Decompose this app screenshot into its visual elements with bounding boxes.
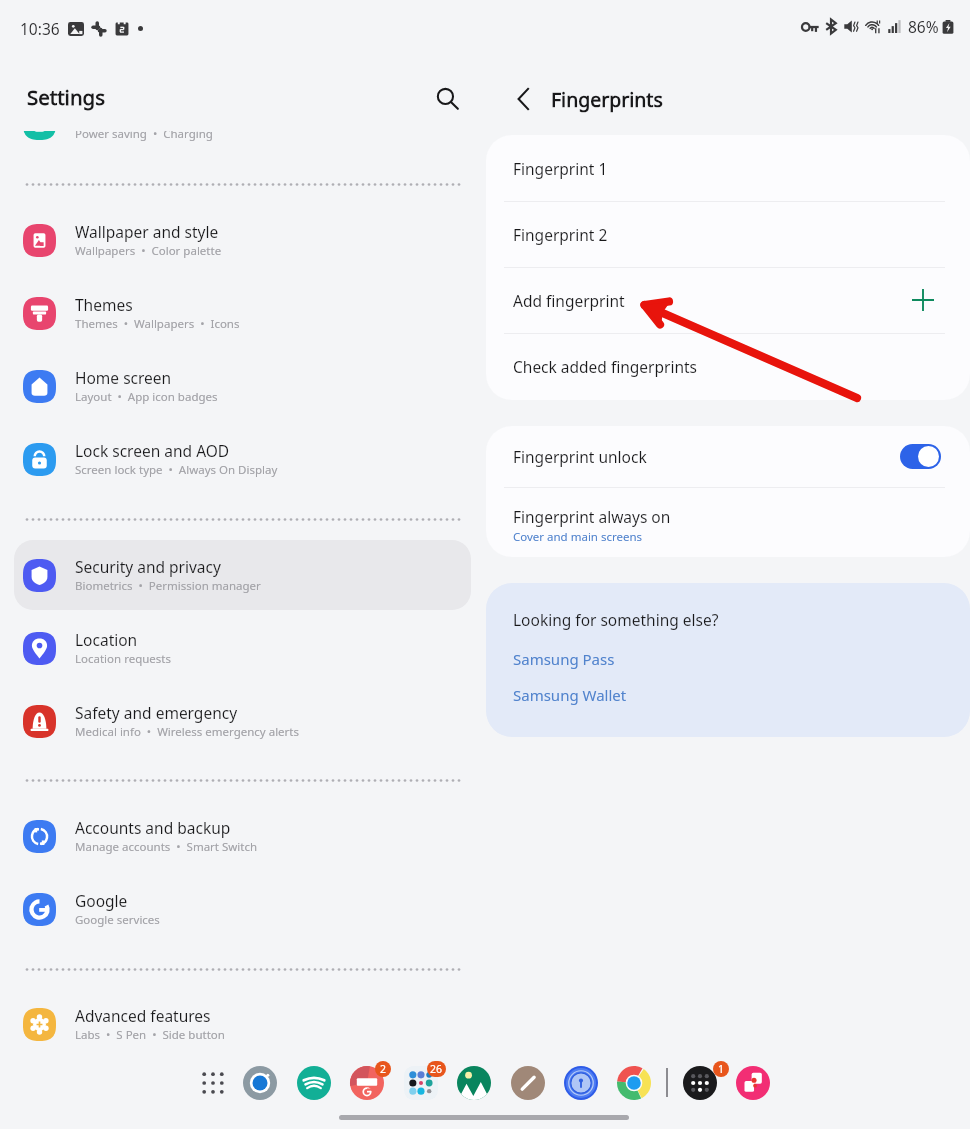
staticText: Fingerprint always on [513, 506, 671, 527]
button[interactable]: App [293, 1062, 335, 1104]
staticText: Lock screen and AOD [75, 440, 230, 461]
button[interactable]: Security and privacy [14, 540, 471, 610]
staticText: Check added fingerprints [513, 356, 698, 377]
staticText: Cover and main screens [513, 529, 643, 545]
staticText: 2 [380, 1062, 387, 1076]
button[interactable]: Fingerprint 2 [486, 201, 970, 267]
button[interactable]: App [239, 1062, 281, 1104]
staticText: Security and privacy [75, 556, 221, 577]
staticText: Power saving • Charging [75, 126, 213, 142]
button[interactable]: Home screen [14, 351, 471, 421]
button[interactable]: Apps [192, 1062, 233, 1103]
staticText: Google [75, 890, 128, 911]
button[interactable]: Safety and emergency [14, 686, 471, 756]
button[interactable]: Fingerprint unlock [486, 426, 970, 487]
button[interactable]: Accounts and backup [14, 801, 471, 871]
staticText: Fingerprint unlock [513, 446, 647, 467]
button[interactable]: Wallpaper and style [14, 205, 471, 275]
button[interactable]: App [346, 1062, 388, 1104]
staticText: Themes [75, 294, 133, 315]
staticText: Add fingerprint [513, 290, 625, 311]
staticText: Fingerprints [551, 86, 663, 113]
button[interactable]: Samsung Pass [513, 649, 615, 669]
staticText: Advanced features [75, 1005, 211, 1026]
staticText: Battery [75, 104, 129, 125]
button[interactable]: Themes [14, 278, 471, 348]
button[interactable]: Location [14, 613, 471, 683]
button[interactable]: Fingerprint unlock toggle [900, 444, 941, 469]
staticText: Manage accounts • Smart Switch [75, 839, 258, 855]
button[interactable]: App [400, 1062, 442, 1104]
staticText: Settings [27, 83, 106, 111]
button[interactable]: App [732, 1062, 774, 1104]
button[interactable]: Check added fingerprints [486, 333, 970, 399]
button[interactable]: App [679, 1062, 721, 1104]
staticText: Wallpapers • Color palette [75, 243, 222, 259]
staticText: Layout • App icon badges [75, 389, 218, 405]
staticText: Labs • S Pen • Side button [75, 1027, 225, 1043]
staticText: Fingerprint 1 [513, 158, 608, 179]
staticText: 86% [908, 16, 939, 37]
staticText: Screen lock type • Always On Display [75, 462, 278, 478]
button[interactable]: Search [425, 76, 469, 120]
staticText: 1 [718, 1062, 725, 1076]
button[interactable]: App [613, 1062, 655, 1104]
staticText: Safety and emergency [75, 702, 238, 723]
staticText: Accounts and backup [75, 817, 231, 838]
button[interactable]: App [507, 1062, 549, 1104]
staticText: Looking for something else? [513, 609, 719, 630]
staticText: Medical info • Wireless emergency alerts [75, 724, 299, 740]
staticText: Fingerprint 2 [513, 224, 608, 245]
staticText: 10:36 [20, 18, 60, 39]
button[interactable]: Samsung Wallet [513, 685, 627, 705]
staticText: Biometrics • Permission manager [75, 578, 261, 594]
staticText: Location requests [75, 651, 171, 667]
button[interactable]: Fingerprint 1 [486, 135, 970, 201]
button[interactable]: Google [14, 874, 471, 944]
button[interactable]: Advanced features [14, 989, 471, 1059]
staticText: 26 [430, 1062, 443, 1076]
button[interactable]: App [453, 1062, 495, 1104]
button[interactable]: App [560, 1062, 602, 1104]
staticText: Google services [75, 912, 160, 928]
staticText: Location [75, 629, 138, 650]
staticText: Home screen [75, 367, 172, 388]
button[interactable]: Lock screen and AOD [14, 424, 471, 494]
button[interactable]: Fingerprint always on [486, 487, 970, 557]
staticText: Wallpaper and style [75, 221, 219, 242]
button[interactable]: Back [504, 78, 546, 120]
staticText: Themes • Wallpapers • Icons [75, 316, 240, 332]
button[interactable]: Add fingerprint [486, 267, 970, 333]
